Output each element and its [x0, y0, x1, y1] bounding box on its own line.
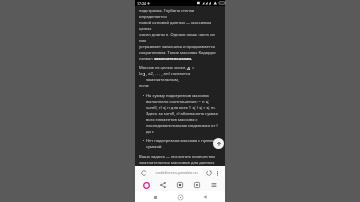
button[interactable]: Menu	[208, 179, 220, 191]
staticText: всех элементов массива с	[146, 117, 198, 123]
staticText: если:	[139, 83, 150, 89]
button[interactable]: codeforces.yandex.ru	[148, 167, 204, 178]
button[interactable]: Yandex assistant	[140, 179, 152, 191]
staticText: выполнено соотношение: − n ⩽	[146, 99, 209, 105]
staticText: На сумму подотрезков массива	[146, 93, 209, 99]
staticText: замечательными.	[154, 56, 193, 62]
staticText: сохранением. Такие массивы Кодарри	[139, 50, 216, 56]
button[interactable]: Tabs	[174, 179, 186, 191]
staticText: назвал	[139, 56, 154, 62]
staticText: 1	[143, 71, 146, 77]
button[interactable]: Back	[200, 192, 210, 202]
staticText: устраивает заказчика и продолжается	[139, 44, 215, 50]
button[interactable]: Share	[157, 179, 169, 191]
staticText: codeforces.yandex.ru	[155, 170, 198, 176]
staticText: новой основой данных — массивом целых	[139, 20, 220, 32]
staticText: Здесь за sum(l, r) обозначена сумма	[146, 111, 218, 117]
staticText: 17:24	[137, 1, 146, 6]
button[interactable]: Turbo mode	[204, 168, 213, 177]
staticText: sum(l, r) ⩽ n для всех 1 ⩽ l ⩽ r ⩽ m.	[146, 105, 216, 111]
button[interactable]: Reload	[139, 168, 148, 177]
staticText: Ваша задача — посчитать количество	[139, 154, 215, 160]
staticText: =	[191, 65, 195, 71]
staticText: , a2, . . . , an) считается замечательны…	[146, 71, 220, 83]
staticText: последовательными индексами от l до r.	[146, 123, 220, 135]
staticText: чисел длины n. Однако лишь часть из них	[139, 32, 220, 44]
staticText: замечательных массивов для данных его n.	[139, 160, 220, 166]
button[interactable]: Scroll to top	[213, 138, 224, 149]
button[interactable]: Recents	[150, 192, 160, 202]
button[interactable]: More options	[213, 169, 221, 177]
staticText: A	[187, 65, 191, 71]
staticText: (a	[139, 71, 143, 77]
button[interactable]: Bookmarks	[191, 179, 203, 191]
staticText: подстроках. Глубина стенки определяется	[139, 8, 220, 20]
staticText: суммой.	[146, 144, 163, 150]
button[interactable]: Home	[175, 192, 185, 202]
staticText: Нет подотрезков массива с нулевой	[146, 138, 218, 144]
staticText: Массив из целых чисел	[139, 65, 187, 71]
